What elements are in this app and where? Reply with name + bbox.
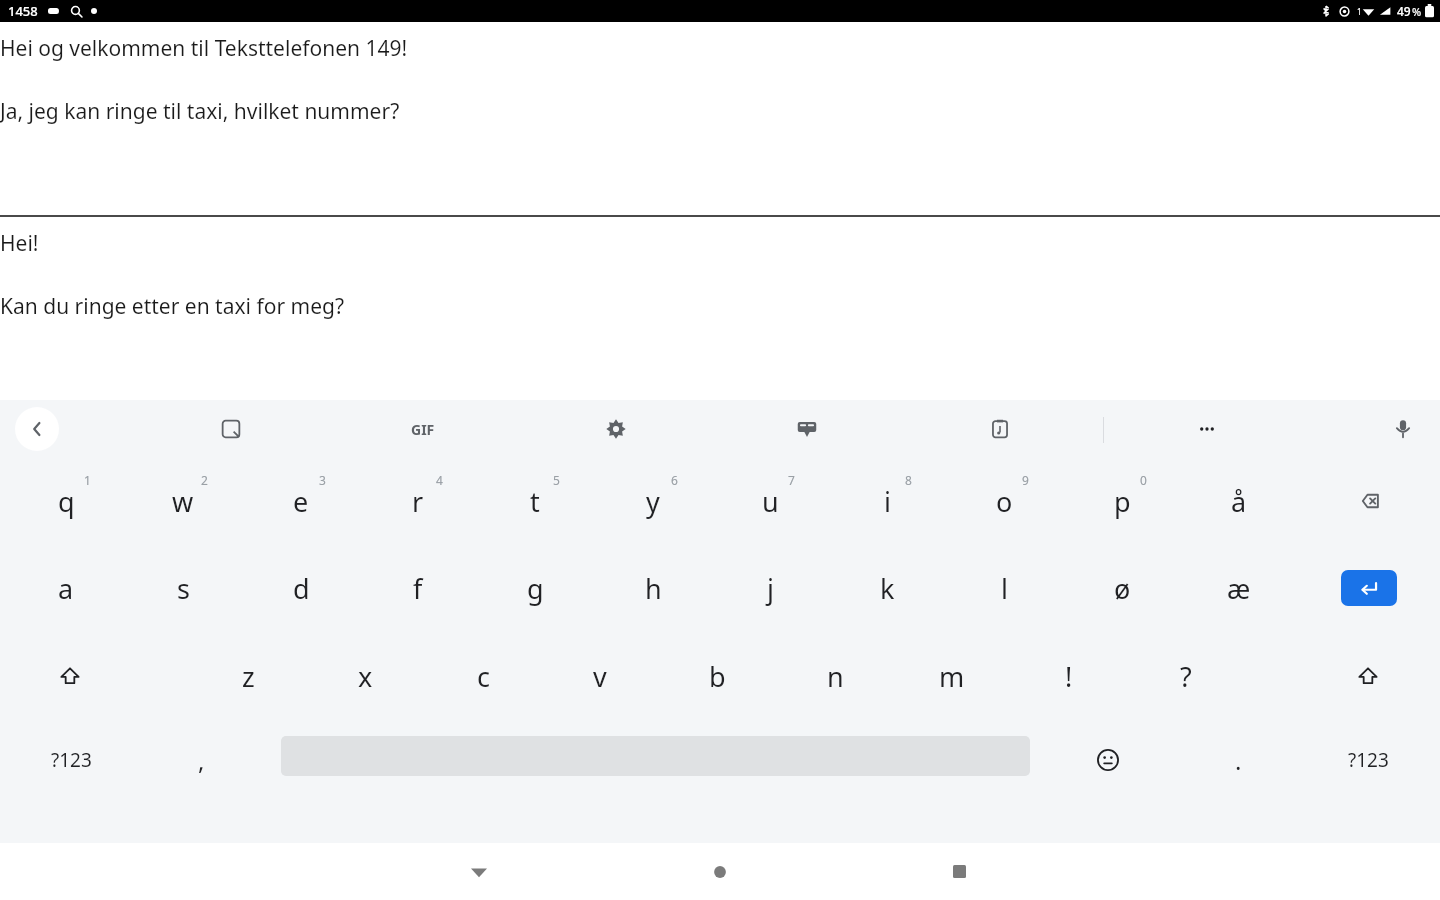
button[interactable]: g — [477, 555, 593, 621]
staticText: d — [293, 570, 310, 607]
button[interactable]: v — [542, 643, 658, 709]
staticText: v — [593, 658, 607, 695]
button[interactable]: o — [946, 468, 1062, 534]
button[interactable]: Home — [692, 843, 748, 900]
staticText: 4 — [436, 472, 443, 488]
staticText: 1 — [84, 472, 91, 488]
staticText: 7 — [788, 472, 795, 488]
staticText: ? — [1180, 658, 1192, 695]
staticText: k — [880, 570, 895, 607]
staticText: q — [58, 483, 75, 520]
staticText: y — [646, 483, 660, 520]
button[interactable]: u — [712, 468, 828, 534]
staticText: r — [412, 483, 424, 520]
staticText: 8 — [905, 472, 912, 488]
button[interactable]: b — [659, 643, 775, 709]
button[interactable]: h — [595, 555, 711, 621]
button[interactable]: , — [143, 727, 259, 793]
button[interactable]: l — [946, 555, 1062, 621]
button[interactable]: a — [8, 555, 124, 621]
staticText: Hei! — [0, 229, 39, 258]
staticText: c — [477, 658, 490, 695]
staticText: l — [1001, 570, 1008, 607]
staticText: x — [358, 658, 373, 695]
button[interactable]: j — [712, 555, 828, 621]
button[interactable]: Clipboard — [978, 407, 1022, 451]
button[interactable]: c — [425, 643, 541, 709]
button[interactable]: Shift — [1310, 643, 1426, 709]
staticText: b — [709, 658, 726, 695]
button[interactable]: Translate — [785, 407, 829, 451]
button[interactable]: Recents — [931, 843, 987, 900]
button[interactable]: å — [1181, 468, 1297, 534]
staticText: w — [172, 483, 194, 520]
button[interactable]: w — [125, 468, 241, 534]
button[interactable]: r — [360, 468, 476, 534]
button[interactable]: Enter — [1341, 570, 1397, 606]
button[interactable]: ?123 — [13, 727, 129, 793]
button[interactable]: t — [477, 468, 593, 534]
button[interactable]: i — [829, 468, 945, 534]
staticText: ø — [1114, 570, 1131, 607]
staticText: , — [198, 744, 205, 777]
button[interactable]: Shift — [12, 643, 128, 709]
button[interactable]: More options — [1185, 407, 1229, 451]
staticText: u — [762, 483, 779, 520]
staticText: ?123 — [51, 747, 92, 773]
staticText: Hei og velkommen til Teksttelefonen 149! — [0, 34, 408, 63]
button[interactable]: ? — [1128, 643, 1244, 709]
staticText: a — [58, 570, 74, 607]
button[interactable]: q — [8, 468, 124, 534]
button[interactable]: Stickers — [209, 407, 253, 451]
staticText: n — [827, 658, 844, 695]
staticText: 6 — [671, 472, 678, 488]
button[interactable]: Back — [451, 843, 507, 900]
button[interactable]: Backspace — [1310, 468, 1426, 534]
staticText: z — [242, 658, 255, 695]
staticText: . — [1235, 744, 1242, 777]
button[interactable]: Back — [15, 407, 59, 451]
button[interactable]: ?123 — [1310, 727, 1426, 793]
staticText: e — [293, 483, 309, 520]
button[interactable]: s — [125, 555, 241, 621]
staticText: m — [939, 658, 965, 695]
button[interactable]: Voice input — [1381, 407, 1425, 451]
button[interactable]: x — [307, 643, 423, 709]
button[interactable]: ! — [1011, 643, 1127, 709]
staticText: ?123 — [1348, 747, 1389, 773]
button[interactable]: e — [243, 468, 359, 534]
staticText: å — [1231, 483, 1247, 520]
staticText: 9 — [1022, 472, 1029, 488]
button[interactable]: Emoji — [1050, 727, 1166, 793]
staticText: Kan du ringe etter en taxi for meg? — [0, 292, 345, 321]
staticText: g — [527, 570, 544, 607]
button[interactable]: GIF — [397, 414, 449, 444]
button[interactable]: p — [1064, 468, 1180, 534]
staticText: 2 — [201, 472, 208, 488]
staticText: 49 — [1397, 3, 1411, 19]
staticText: j — [767, 570, 774, 607]
button[interactable]: d — [243, 555, 359, 621]
staticText: GIF — [411, 420, 435, 439]
staticText: 0 — [1140, 472, 1147, 488]
staticText: 1 — [1357, 6, 1362, 17]
button[interactable]: ø — [1064, 555, 1180, 621]
staticText: % — [1412, 4, 1422, 19]
button[interactable]: . — [1180, 727, 1296, 793]
staticText: t — [530, 483, 540, 520]
staticText: s — [177, 570, 190, 607]
staticText: h — [645, 570, 662, 607]
staticText: æ — [1227, 570, 1251, 607]
button[interactable]: m — [894, 643, 1010, 709]
button[interactable]: k — [829, 555, 945, 621]
staticText: 1458 — [8, 2, 38, 20]
button[interactable]: y — [595, 468, 711, 534]
button[interactable]: z — [190, 643, 306, 709]
button[interactable]: f — [360, 555, 476, 621]
button[interactable]: æ — [1181, 555, 1297, 621]
button[interactable]: Settings — [594, 407, 638, 451]
staticText: ! — [1065, 658, 1073, 695]
button[interactable]: n — [777, 643, 893, 709]
staticText: o — [996, 483, 1013, 520]
